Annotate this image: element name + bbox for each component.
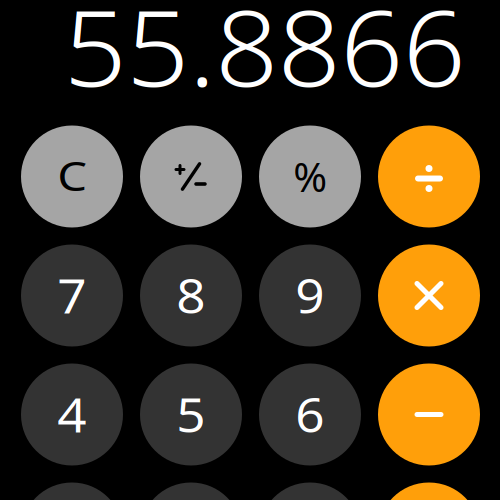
staticText: 9 xyxy=(296,264,323,326)
staticText: 4 xyxy=(58,383,85,445)
button[interactable]: 5 xyxy=(140,363,242,465)
staticText: C xyxy=(59,149,84,202)
staticText: 7 xyxy=(58,264,85,326)
button[interactable]: 1 xyxy=(21,482,123,500)
button[interactable]: Divide xyxy=(378,125,480,227)
staticText: 6 xyxy=(296,383,323,445)
button[interactable]: 9 xyxy=(259,244,361,346)
button[interactable]: Minus xyxy=(378,363,480,465)
button[interactable]: Plus Minus xyxy=(140,125,242,227)
staticText: 55.8866 xyxy=(75,0,454,115)
staticText: % xyxy=(293,150,326,203)
button[interactable]: Multiply xyxy=(378,244,480,346)
button[interactable]: 2 xyxy=(140,482,242,500)
button[interactable]: Clear xyxy=(21,125,123,227)
button[interactable]: 6 xyxy=(259,363,361,465)
button[interactable]: 3 xyxy=(259,482,361,500)
staticText: 8 xyxy=(177,264,204,326)
button[interactable]: % xyxy=(259,125,361,227)
button[interactable]: Plus xyxy=(378,482,480,500)
button[interactable]: 7 xyxy=(21,244,123,346)
staticText: 5 xyxy=(177,383,204,445)
button[interactable]: 8 xyxy=(140,244,242,346)
button[interactable]: 4 xyxy=(21,363,123,465)
